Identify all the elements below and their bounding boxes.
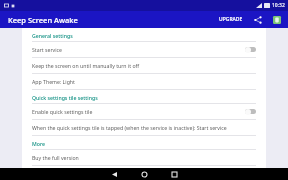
- staticText: Keep the screen on until manually turn i…: [32, 62, 140, 69]
- staticText: Quick settings tile settings: [32, 94, 98, 101]
- button[interactable]: UPGRADE: [217, 14, 245, 25]
- staticText: 10:32: [272, 2, 285, 9]
- button[interactable]: Share: [251, 13, 264, 26]
- button[interactable]: App Theme: Light: [22, 74, 266, 89]
- staticText: Start service: [32, 46, 245, 53]
- button[interactable]: Buy the full version: [22, 150, 266, 165]
- staticText: UPGRADE: [219, 16, 243, 23]
- button[interactable]: Enable quick settings tile: [22, 104, 266, 119]
- button[interactable]: Recent apps: [159, 168, 189, 180]
- button[interactable]: Back: [99, 168, 129, 180]
- staticText: App Theme: Light: [32, 78, 75, 85]
- staticText: More: [32, 140, 45, 147]
- button[interactable]: Start service: [22, 42, 266, 57]
- staticText: Buy the full version: [32, 154, 79, 161]
- button[interactable]: App icon: [270, 13, 283, 26]
- staticText: Enable quick settings tile: [32, 108, 245, 115]
- button[interactable]: When the quick settings tile is tapped (…: [22, 120, 266, 135]
- staticText: General settings: [32, 32, 73, 39]
- staticText: Keep Screen Awake: [8, 15, 78, 25]
- button[interactable]: Home: [129, 168, 159, 180]
- staticText: When the quick settings tile is tapped (…: [32, 124, 227, 131]
- button[interactable]: Keep the screen on until manually turn i…: [22, 58, 266, 73]
